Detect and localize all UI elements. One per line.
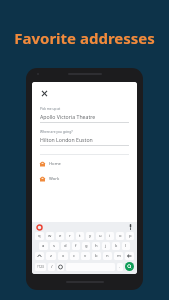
staticText: b: [95, 253, 98, 259]
button[interactable]: Close: [40, 89, 49, 98]
staticText: v: [84, 253, 87, 259]
staticText: h: [95, 243, 98, 249]
staticText: c: [73, 253, 76, 259]
button[interactable]: Pick me up at: [40, 107, 129, 123]
staticText: i: [109, 233, 111, 239]
button[interactable]: s: [50, 242, 59, 250]
button[interactable]: y: [86, 232, 94, 240]
button[interactable]: t: [76, 232, 84, 240]
button[interactable]: /: [48, 263, 55, 271]
button[interactable]: d: [61, 242, 70, 250]
button[interactable]: q: [35, 232, 44, 240]
staticText: Hilton London Euston: [40, 136, 93, 143]
staticText: f: [75, 243, 77, 249]
button[interactable]: .: [117, 263, 123, 271]
staticText: g: [85, 243, 88, 249]
button[interactable]: Backspace: [125, 252, 134, 260]
button[interactable]: k: [112, 242, 120, 250]
staticText: x: [62, 253, 65, 259]
staticText: m: [117, 253, 121, 259]
button[interactable]: f: [72, 242, 80, 250]
staticText: s: [53, 243, 56, 249]
staticText: o: [119, 233, 122, 239]
button[interactable]: g: [82, 242, 90, 250]
button[interactable]: Shift: [35, 252, 44, 260]
button[interactable]: i: [106, 232, 114, 240]
button[interactable]: Home: [40, 160, 129, 168]
button[interactable]: j: [102, 242, 110, 250]
button[interactable]: u: [96, 232, 104, 240]
staticText: k: [115, 243, 118, 249]
button[interactable]: Voice input: [129, 224, 132, 230]
button[interactable]: z: [46, 252, 56, 260]
staticText: w: [48, 233, 52, 239]
staticText: /: [51, 264, 53, 270]
button[interactable]: x: [58, 252, 68, 260]
button[interactable]: p: [126, 232, 134, 240]
button[interactable]: e: [56, 232, 64, 240]
button[interactable]: v: [81, 252, 90, 260]
staticText: z: [50, 253, 52, 259]
staticText: Pick me up at: [40, 107, 61, 111]
button[interactable]: Search: [125, 262, 134, 271]
button[interactable]: c: [70, 252, 79, 260]
staticText: n: [106, 253, 109, 259]
staticText: Home: [49, 161, 61, 167]
button[interactable]: Emoji: [57, 263, 64, 271]
button[interactable]: Google: [37, 225, 42, 230]
button[interactable]: n: [103, 252, 112, 260]
button[interactable]: r: [66, 232, 74, 240]
button[interactable]: h: [92, 242, 100, 250]
button[interactable]: l: [122, 242, 130, 250]
staticText: e: [59, 233, 62, 239]
staticText: l: [125, 243, 127, 249]
staticText: q: [38, 233, 41, 239]
button[interactable]: m: [114, 252, 123, 260]
staticText: ?123: [37, 265, 44, 269]
staticText: Where are you going?: [40, 130, 73, 134]
staticText: Work: [49, 176, 60, 182]
button[interactable]: b: [92, 252, 101, 260]
staticText: a: [42, 243, 45, 249]
staticText: Favorite addresses: [14, 28, 155, 48]
staticText: Apollo Victoria Theatre: [40, 113, 96, 120]
staticText: t: [79, 233, 81, 239]
staticText: j: [105, 243, 107, 249]
button[interactable]: a: [39, 242, 48, 250]
button[interactable]: ?123: [35, 263, 46, 271]
staticText: p: [129, 233, 132, 239]
staticText: d: [64, 243, 67, 249]
button[interactable]: w: [46, 232, 54, 240]
staticText: .: [119, 264, 121, 270]
button[interactable]: o: [116, 232, 124, 240]
staticText: u: [99, 233, 102, 239]
button[interactable]: Where are you going?: [40, 130, 129, 146]
staticText: r: [69, 233, 71, 239]
staticText: y: [89, 233, 92, 239]
button[interactable]: Work: [40, 175, 129, 183]
